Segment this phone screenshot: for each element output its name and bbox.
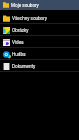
button[interactable]: Moje soubory — [0, 0, 79, 10]
button[interactable]: Hudba — [0, 48, 79, 60]
button[interactable]: Videa — [0, 36, 79, 48]
staticText: Všechny soubory — [12, 16, 48, 21]
button[interactable]: Obrázky — [0, 24, 79, 36]
staticText: Moje soubory — [11, 3, 39, 8]
staticText: Obrázky — [12, 28, 29, 33]
button[interactable]: Všechny soubory — [0, 12, 79, 24]
staticText: Dokumenty — [12, 64, 36, 69]
staticText: Videa — [12, 40, 24, 45]
staticText: Hudba — [12, 52, 26, 57]
button[interactable]: Dokumenty — [0, 60, 79, 72]
